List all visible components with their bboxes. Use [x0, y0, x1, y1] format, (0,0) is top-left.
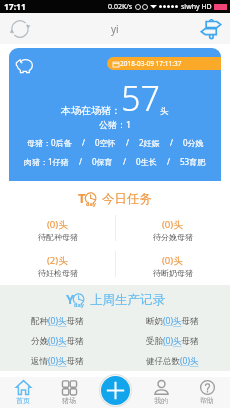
staticText: 今日任务	[102, 191, 152, 207]
staticText: /	[167, 156, 170, 167]
staticText: 0生长	[136, 156, 157, 167]
button[interactable]: Add	[101, 376, 130, 405]
button[interactable]: 分娩(0)头母猪	[31, 335, 84, 347]
button[interactable]: 断奶(0)头母猪	[146, 315, 199, 327]
staticText: /	[82, 137, 85, 148]
button[interactable]: (2)头	[0, 248, 115, 284]
staticText: 肉猪：1仔猪	[24, 156, 69, 167]
staticText: 返情(0)头母猪	[31, 355, 84, 367]
button[interactable]: 猪场	[46, 377, 92, 408]
button[interactable]: (0)头	[0, 212, 115, 248]
staticText: /	[79, 156, 82, 167]
staticText: 断奶(0)头母猪	[146, 315, 199, 327]
staticText: Y	[66, 290, 75, 308]
staticText: 猪场	[62, 396, 76, 405]
staticText: 待断奶母猪	[153, 268, 193, 278]
staticText: 首页	[16, 396, 30, 405]
staticText: day	[86, 200, 96, 207]
button[interactable]: Refresh	[9, 18, 31, 40]
staticText: 0空怀	[95, 137, 116, 148]
staticText: day	[74, 301, 84, 308]
staticText: /	[126, 137, 129, 148]
staticText: 2妊娠	[139, 137, 160, 148]
staticText: T	[78, 189, 86, 207]
staticText: yi	[111, 22, 119, 36]
staticText: /	[123, 156, 126, 167]
button[interactable]: 受胎(0)头母猪	[146, 335, 199, 347]
staticText: 母猪：0后备	[27, 137, 72, 148]
staticText: 配种(0)头母猪	[31, 315, 84, 327]
staticText: 帮助	[200, 396, 214, 405]
staticText: 头	[160, 106, 169, 117]
button[interactable]: 首页	[0, 377, 46, 408]
staticText: 待配种母猪	[38, 232, 78, 242]
button[interactable]: 我的	[138, 377, 184, 408]
button[interactable]: (0)头	[115, 212, 230, 248]
staticText: 0保育	[92, 156, 113, 167]
staticText: 待妊检母猪	[38, 268, 78, 278]
staticText: slwhy HD	[181, 2, 212, 12]
staticText: 0分娩	[183, 137, 204, 148]
button[interactable]: 帮助	[184, 377, 230, 408]
staticText: /	[170, 137, 173, 148]
button[interactable]: Navigation	[200, 18, 222, 40]
staticText: 待分娩母猪	[153, 232, 193, 242]
staticText: 健仔总数(0)头	[146, 355, 199, 367]
button[interactable]: 返情(0)头母猪	[31, 355, 84, 367]
staticText: 公猪：1	[99, 118, 132, 130]
staticText: 上周生产记录	[90, 292, 165, 308]
staticText: 分娩(0)头母猪	[31, 335, 84, 347]
staticText: 我的	[154, 396, 168, 405]
button[interactable]: (0)头	[115, 248, 230, 284]
staticText: 受胎(0)头母猪	[146, 335, 199, 347]
staticText: (0)头	[47, 218, 68, 231]
staticText: 57	[121, 75, 160, 121]
staticText: (0)头	[162, 218, 183, 231]
staticText: 17:11	[4, 1, 26, 13]
staticText: (2)头	[47, 254, 68, 267]
staticText: 2018-03-09 17:11:37	[120, 59, 182, 68]
staticText: 本场在场猪：	[61, 104, 121, 117]
button[interactable]: 配种(0)头母猪	[31, 315, 84, 327]
staticText: 0.02K/s	[108, 2, 133, 12]
staticText: (0)头	[162, 254, 183, 267]
button[interactable]: 健仔总数(0)头	[146, 355, 199, 367]
staticText: 53育肥	[180, 156, 206, 167]
